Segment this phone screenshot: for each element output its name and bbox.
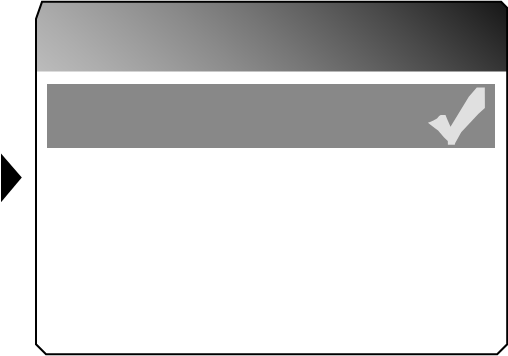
button[interactable]: Selected item, checked	[47, 84, 495, 148]
button[interactable]: Title bar	[36, 2, 507, 72]
button[interactable]: Pointer	[0, 152, 24, 204]
